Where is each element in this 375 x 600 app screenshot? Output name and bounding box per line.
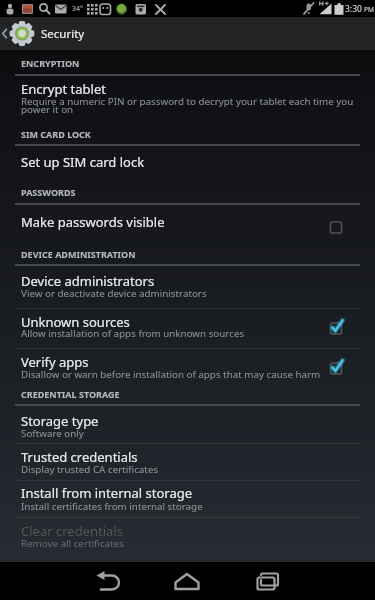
button[interactable] [0,444,375,480]
staticText: Security [41,26,85,42]
staticText: Disallow or warn before installation of … [21,368,321,381]
staticText: Unknown sources [21,313,130,331]
button[interactable] [0,204,375,241]
button[interactable] [167,562,207,600]
staticText: Software only [21,427,84,440]
staticText: Device administrators [21,272,155,290]
button[interactable] [0,518,375,555]
button[interactable] [0,265,375,308]
button[interactable]: Security [0,17,375,50]
button[interactable] [0,406,375,443]
staticText: View or deactivate device administrators [21,287,207,300]
staticText: 34° [72,4,84,14]
staticText: power it on [21,103,74,116]
button[interactable] [0,75,375,120]
staticText: Clear credentials [21,522,123,540]
staticText: Display trusted CA certificates [21,463,159,476]
button[interactable] [248,562,288,600]
staticText: SIM CARD LOCK [21,128,91,140]
staticText: Require a numeric PIN or password to dec… [21,95,354,108]
staticText: CREDENTIAL STORAGE [21,388,120,400]
staticText: 3:30 PM [345,3,374,15]
staticText: Storage type [21,412,99,430]
staticText: DEVICE ADMINISTRATION [21,248,136,260]
button[interactable] [0,348,375,381]
staticText: Encrypt tablet [21,80,106,98]
staticText: Allow installation of apps from unknown … [21,327,245,340]
button[interactable] [87,562,127,600]
button[interactable] [0,481,375,517]
button[interactable] [0,145,375,179]
staticText: Remove all certificates [21,537,124,550]
staticText: Set up SIM card lock [21,153,145,171]
staticText: PASSWORDS [21,186,76,198]
staticText: ENCRYPTION [21,57,80,69]
staticText: Make passwords visible [21,213,165,231]
staticText: Install certificates from internal stora… [21,500,203,513]
staticText: Install from internal storage [21,484,193,502]
button[interactable] [0,308,375,348]
staticText: Trusted credentials [21,448,138,466]
staticText: Verify apps [21,353,89,371]
